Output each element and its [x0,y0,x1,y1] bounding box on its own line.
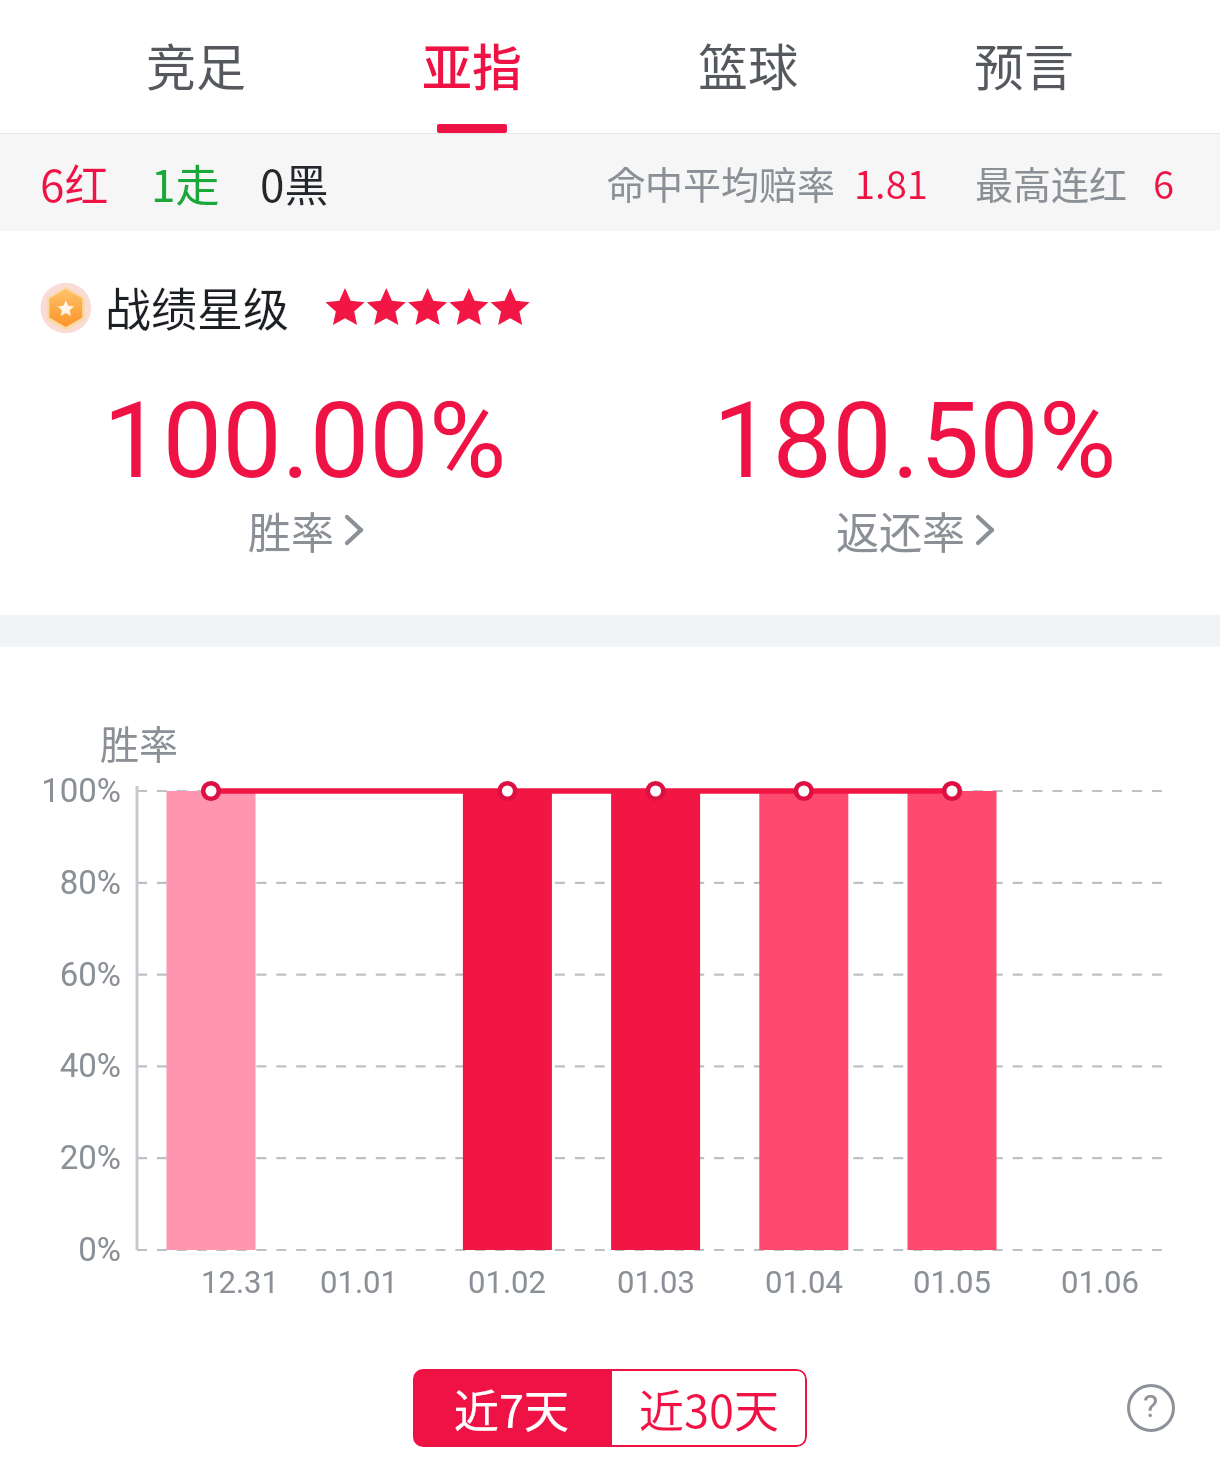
button[interactable]: 亚指 [334,0,610,134]
staticText: 01.02 [427,1264,587,1300]
staticText: 12.31 [160,1264,320,1300]
button[interactable]: 篮球 [610,0,886,134]
staticText: 40% [0,1046,121,1085]
button[interactable]: 近30天 [610,1369,807,1447]
staticText: 100% [0,771,121,810]
staticText: 近7天 [454,1376,569,1441]
staticText: 1走 [151,151,220,215]
staticText: 20% [0,1138,121,1177]
button[interactable]: Help [1127,1384,1175,1432]
staticText: 胜率 [100,714,179,770]
staticText: 返还率 [836,499,965,561]
staticText: 亚指 [422,28,522,100]
staticText: 预言 [974,28,1074,100]
staticText: 60% [0,955,121,994]
button[interactable]: 预言 [886,0,1162,134]
staticText: 01.06 [1020,1264,1180,1300]
staticText: 1.81 [854,155,928,210]
staticText: 01.03 [576,1264,736,1300]
button[interactable]: 近7天 [413,1369,610,1447]
staticText: 近30天 [639,1376,779,1441]
button[interactable]: 180.50% [610,360,1220,590]
staticText: 战绩星级 [105,273,289,340]
staticText: 6红 [40,151,109,215]
staticText: ? [1143,1387,1159,1425]
staticText: 01.05 [872,1264,1032,1300]
staticText: 0黑 [260,151,329,215]
staticText: 6 [1153,155,1175,210]
staticText: 命中平均赔率 [607,155,836,210]
staticText: 80% [0,863,121,902]
staticText: 竞足 [146,28,246,100]
staticText: 100.00% [103,379,507,503]
staticText: 01.04 [724,1264,884,1300]
button[interactable]: 竞足 [58,0,334,134]
staticText: 胜率 [248,499,334,561]
staticText: 180.50% [713,379,1117,503]
staticText: 0% [0,1230,121,1269]
button[interactable]: 100.00% [0,360,610,590]
staticText: 篮球 [698,28,798,100]
staticText: 最高连红 [975,155,1128,210]
staticText: 01.01 [279,1264,439,1300]
